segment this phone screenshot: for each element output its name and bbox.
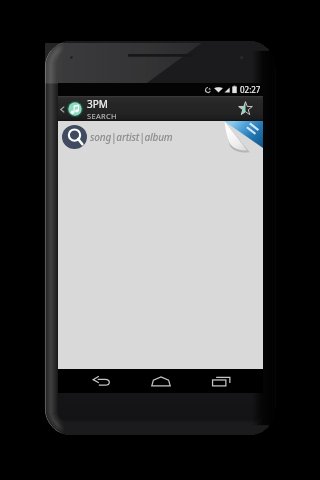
button[interactable]: More Apps — [224, 121, 263, 151]
button[interactable]: Favourites — [233, 96, 258, 121]
staticText: song|artist|album — [90, 130, 173, 144]
button[interactable]: 3PM — [58, 97, 119, 121]
staticText: 02:27 — [240, 84, 261, 95]
staticText: 3PM — [87, 97, 108, 111]
button[interactable]: Back — [80, 369, 122, 393]
button[interactable]: Recent apps — [200, 369, 242, 393]
button[interactable]: Home — [140, 369, 182, 393]
staticText: SEARCH — [87, 111, 117, 121]
button[interactable]: song|artist|album — [58, 121, 263, 152]
